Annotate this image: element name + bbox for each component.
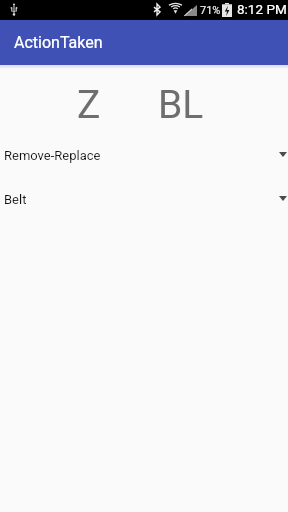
staticText: ActionTaken	[14, 33, 103, 52]
staticText: Z	[77, 82, 101, 128]
staticText: 8:12 PM	[237, 1, 287, 17]
button[interactable]: Belt	[0, 177, 288, 221]
other: USB connected	[10, 3, 18, 16]
staticText: 71%	[200, 4, 221, 17]
staticText: Belt	[4, 192, 27, 207]
button[interactable]: Remove-Replace	[0, 133, 288, 177]
other: Mobile signal	[184, 5, 197, 16]
staticText: Remove-Replace	[4, 148, 101, 163]
staticText: BL	[158, 82, 204, 128]
